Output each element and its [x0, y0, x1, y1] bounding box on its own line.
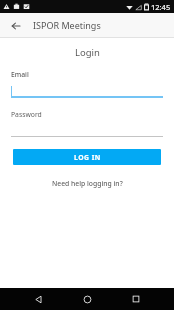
button[interactable]: Home [76, 288, 98, 310]
staticText: 12:45 [151, 2, 171, 12]
staticText: Need help logging in? [52, 179, 123, 188]
button[interactable]: Back [27, 288, 49, 310]
staticText: Email [11, 70, 29, 79]
button[interactable]: LOG IN [13, 149, 161, 165]
button[interactable]: Back [7, 17, 24, 34]
staticText: ISPOR Meetings [33, 19, 101, 31]
button[interactable]: Need help logging in? [46, 177, 129, 190]
button[interactable]: Recent apps [125, 288, 147, 310]
staticText: Login [75, 46, 100, 59]
staticText: LOG IN [74, 153, 101, 162]
staticText: Password [11, 110, 42, 119]
